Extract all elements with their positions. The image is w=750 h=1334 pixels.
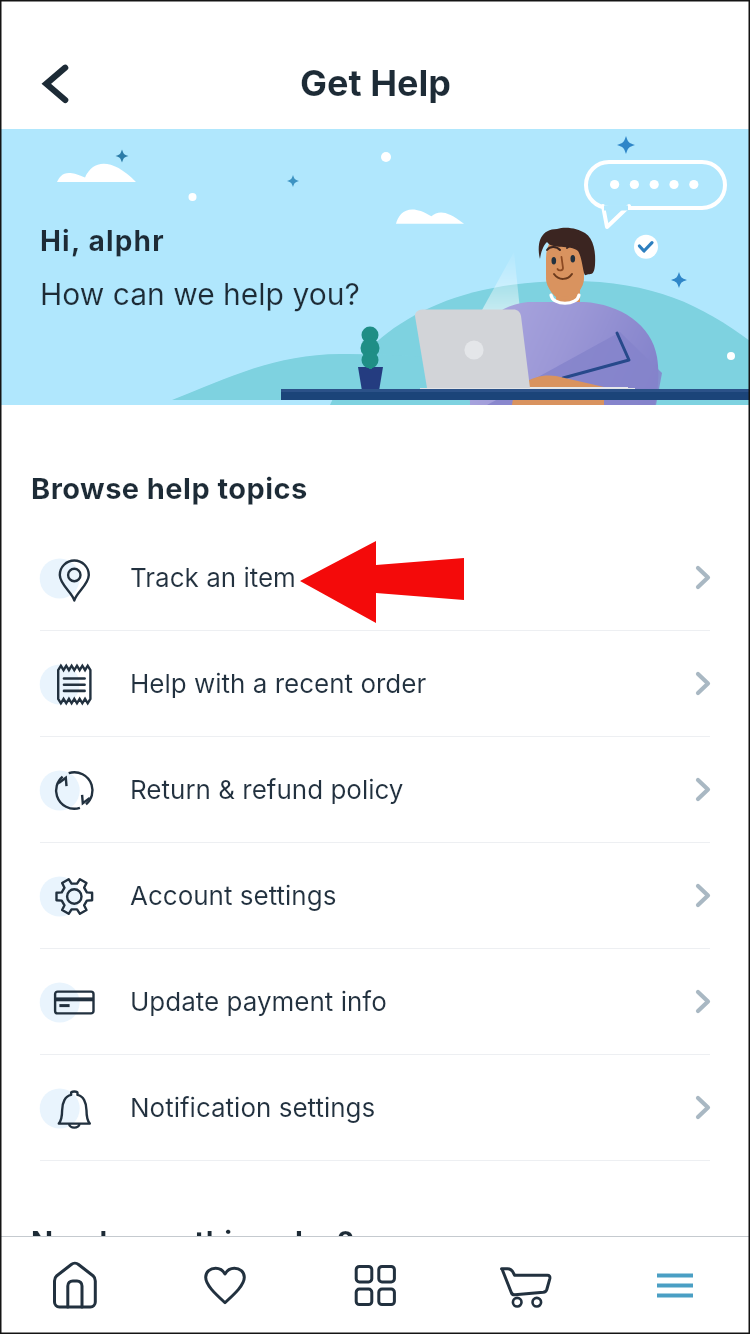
staticText: Return & refund policy (130, 774, 404, 805)
button[interactable]: Notification settings (0, 1055, 750, 1160)
button[interactable]: Menu (600, 1237, 750, 1334)
staticText: Browse help topics (31, 471, 308, 506)
button[interactable]: Account settings (0, 843, 750, 948)
staticText: Update payment info (130, 986, 387, 1017)
staticText: Notification settings (130, 1092, 376, 1123)
staticText: Need something else? (31, 1224, 355, 1259)
button[interactable]: Track an item (0, 525, 750, 630)
button[interactable]: Favorites (150, 1237, 300, 1334)
staticText: Get Help (300, 61, 451, 105)
button[interactable]: Update payment info (0, 949, 750, 1054)
button[interactable]: Help with a recent order (0, 631, 750, 736)
button[interactable]: Cart (450, 1237, 600, 1334)
staticText: Track an item (130, 562, 296, 593)
button[interactable]: Back (22, 50, 90, 118)
button[interactable]: Departments (300, 1237, 450, 1334)
button[interactable]: Return & refund policy (0, 737, 750, 842)
button[interactable]: Home (0, 1237, 150, 1334)
staticText: Help with a recent order (130, 668, 427, 699)
staticText: Hi, alphr (40, 224, 165, 258)
staticText: Account settings (130, 880, 337, 911)
staticText: How can we help you? (40, 276, 360, 312)
